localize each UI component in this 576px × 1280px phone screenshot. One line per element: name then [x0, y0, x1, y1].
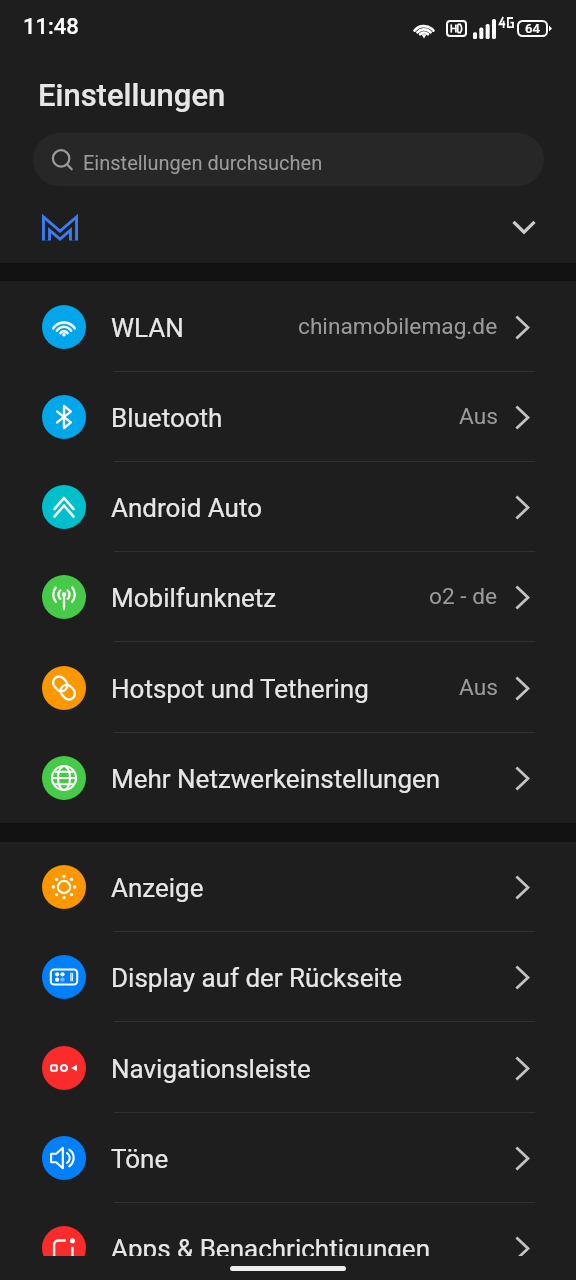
button[interactable]: Bluetooth — [0, 372, 576, 462]
staticText: Aus — [459, 674, 498, 701]
button[interactable]: Apps & Benachrichtigungen — [0, 1203, 576, 1280]
staticText: Apps & Benachrichtigungen — [111, 1234, 430, 1264]
button[interactable]: Android Auto — [0, 462, 576, 552]
staticText: Töne — [111, 1144, 169, 1174]
button[interactable]: Navigationsleiste — [0, 1023, 576, 1113]
staticText: Hotspot und Tethering — [111, 674, 369, 704]
staticText: Mehr Netzwerkeinstellungen — [111, 764, 441, 794]
button[interactable]: Anzeige — [0, 842, 576, 932]
staticText: Navigationsleiste — [111, 1054, 311, 1084]
button[interactable]: Einstellungen durchsuchen — [33, 133, 544, 186]
button[interactable]: WLAN — [0, 282, 576, 372]
staticText: Bluetooth — [111, 403, 223, 433]
button[interactable]: Display auf der Rückseite — [0, 932, 576, 1022]
staticText: Einstellungen durchsuchen — [83, 151, 323, 174]
button[interactable]: Töne — [0, 1113, 576, 1203]
staticText: WLAN — [111, 313, 184, 343]
button[interactable]: Mehr Netzwerkeinstellungen — [0, 733, 576, 823]
staticText: chinamobilemag.de — [298, 313, 498, 340]
staticText: 64 — [525, 21, 540, 36]
staticText: 11:48 — [23, 14, 79, 40]
staticText: Aus — [459, 403, 498, 430]
staticText: Anzeige — [111, 873, 204, 903]
button[interactable]: Hotspot und Tethering — [0, 643, 576, 733]
button[interactable]: Konto — [0, 190, 576, 263]
button[interactable]: Mobilfunknetz — [0, 552, 576, 642]
staticText: Mobilfunknetz — [111, 583, 277, 613]
staticText: Android Auto — [111, 493, 263, 523]
staticText: Einstellungen — [38, 77, 226, 113]
staticText: Display auf der Rückseite — [111, 963, 403, 993]
staticText: o2 - de — [429, 583, 498, 610]
